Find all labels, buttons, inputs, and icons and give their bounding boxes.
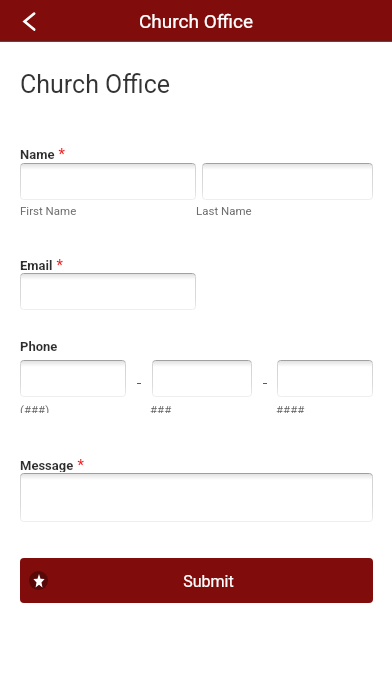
staticText: Name (20, 147, 55, 161)
staticText: Phone (20, 339, 58, 353)
button[interactable] (20, 163, 196, 200)
staticText: Submit (44, 572, 373, 591)
staticText: ### (150, 403, 276, 413)
button[interactable] (20, 273, 196, 310)
button[interactable] (152, 360, 252, 397)
button[interactable]: Back (0, 1, 44, 42)
staticText: Church Office (20, 70, 170, 99)
staticText: Church Office (139, 10, 253, 32)
staticText: (###) (20, 403, 150, 413)
staticText: Last Name (196, 204, 373, 217)
staticText: Message (20, 458, 74, 472)
staticText: First Name (20, 204, 196, 217)
button[interactable] (202, 163, 373, 200)
staticText: Email (20, 258, 53, 272)
button[interactable] (20, 360, 126, 397)
button[interactable] (277, 360, 373, 397)
staticText: #### (276, 403, 305, 413)
staticText: * (55, 146, 65, 160)
button[interactable] (20, 473, 373, 522)
staticText: * (74, 457, 84, 471)
button[interactable]: Submit (20, 558, 373, 603)
staticText: * (53, 257, 63, 271)
